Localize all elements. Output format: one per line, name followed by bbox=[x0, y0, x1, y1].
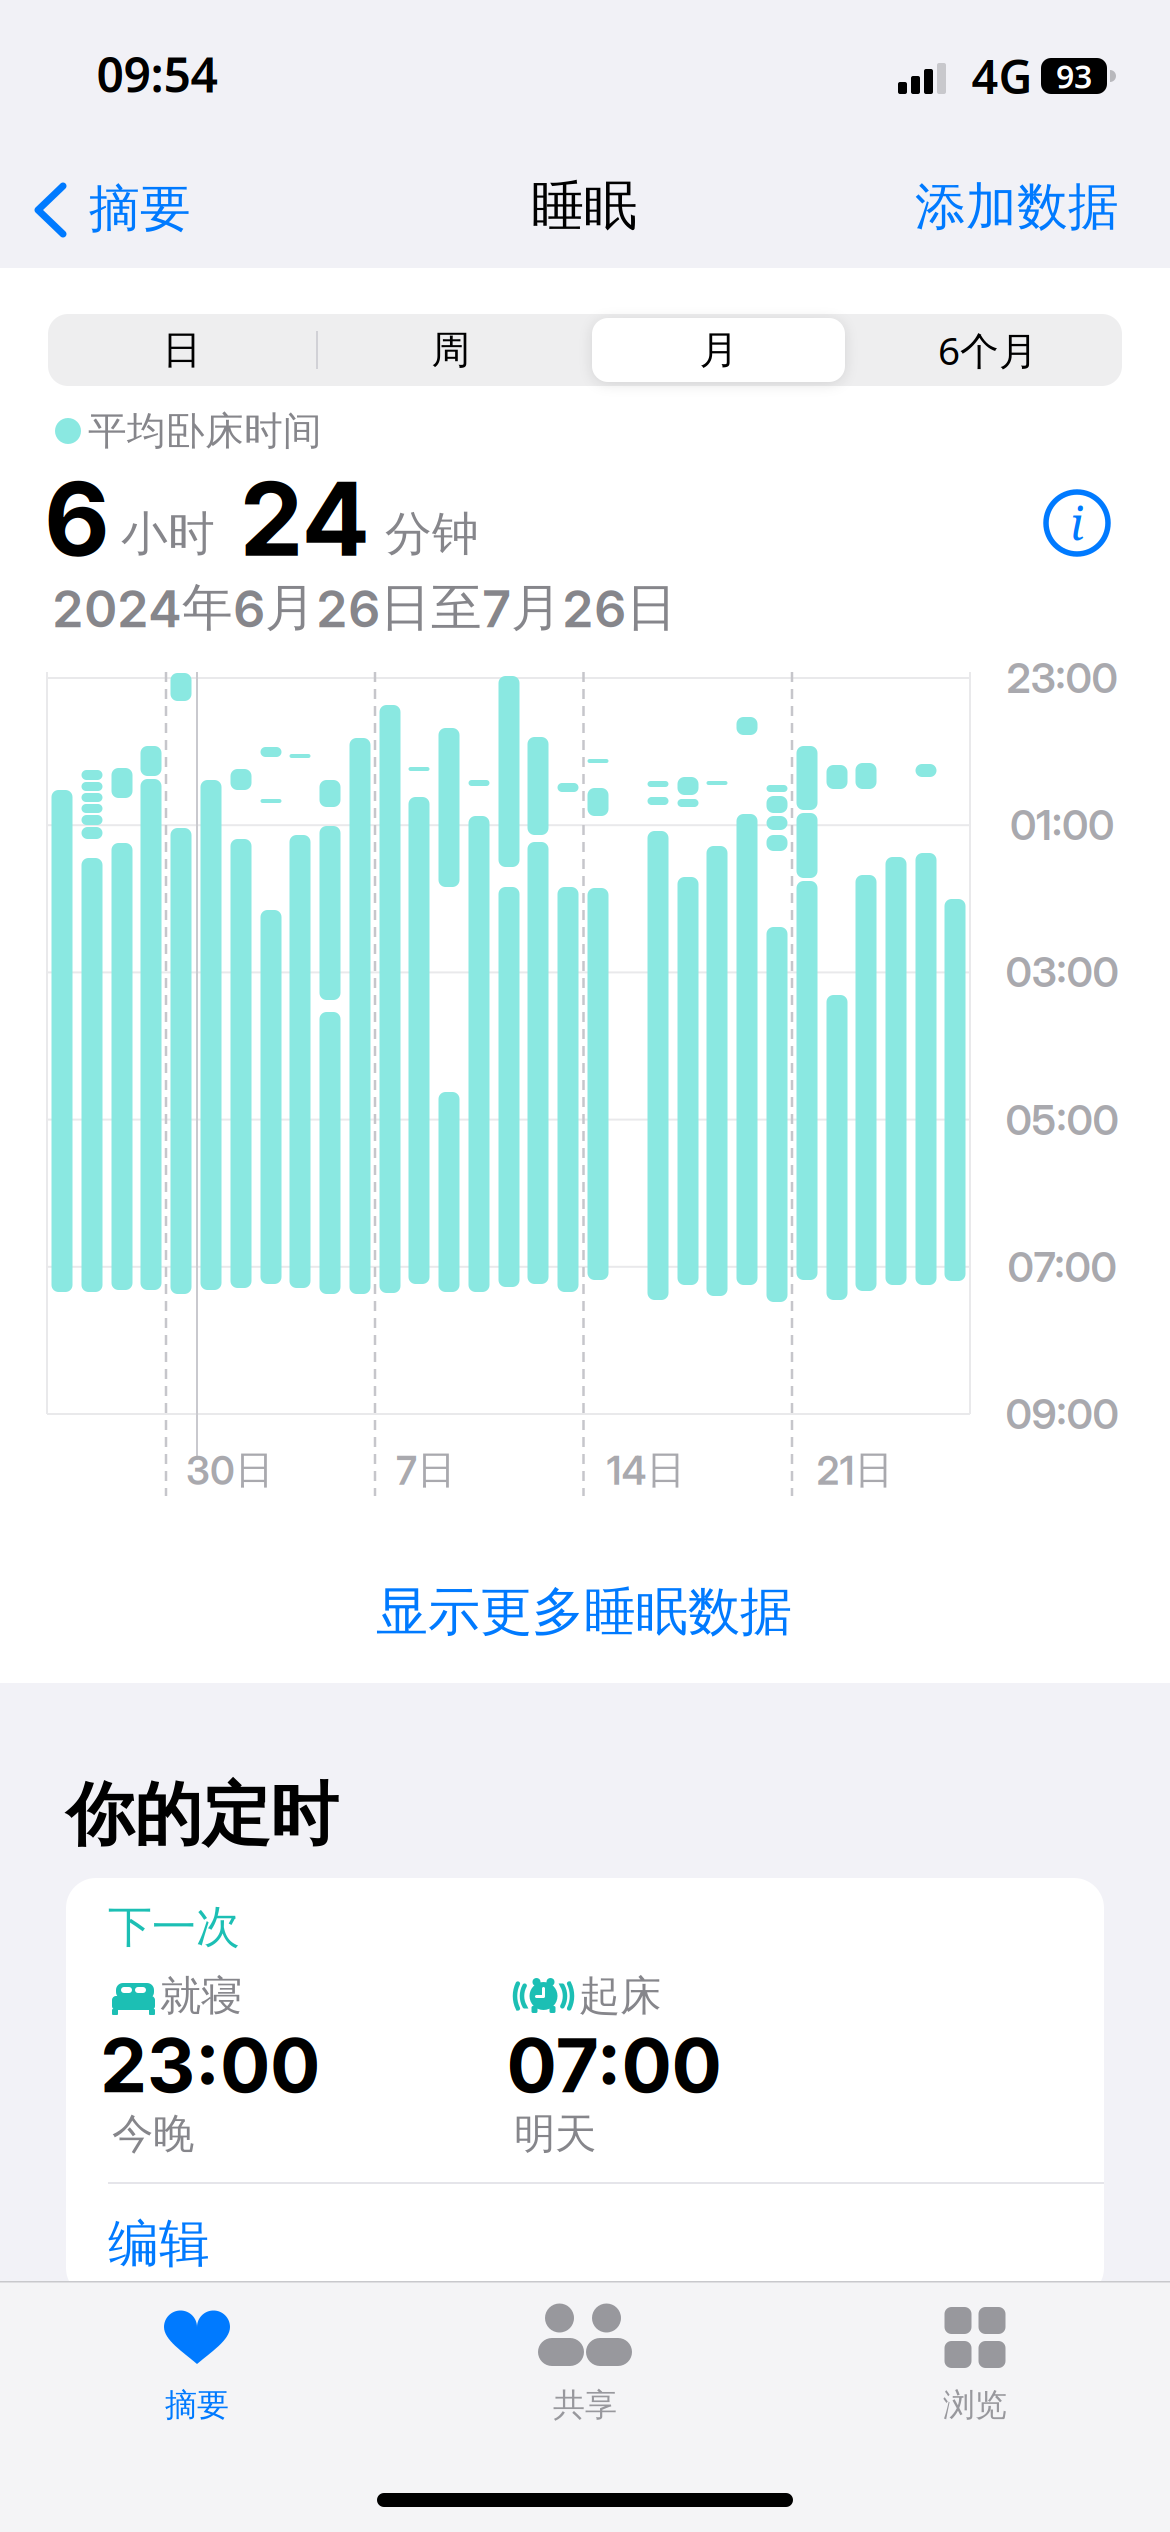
button[interactable]: 共享 bbox=[390, 2290, 778, 2480]
button[interactable]: 摘要 bbox=[30, 164, 250, 254]
staticText: 下一次 bbox=[108, 1900, 240, 1954]
staticText: 摘要 bbox=[165, 2385, 229, 2425]
button[interactable]: 6个月 bbox=[854, 314, 1122, 386]
staticText: 6 bbox=[44, 458, 110, 580]
staticText: 浏览 bbox=[943, 2385, 1007, 2425]
button[interactable]: i bbox=[1032, 478, 1122, 568]
staticText: 93 bbox=[1056, 55, 1092, 97]
staticText: 07:00 bbox=[506, 2020, 721, 2110]
staticText: 4G bbox=[971, 45, 1032, 107]
staticText: 显示更多睡眠数据 bbox=[376, 1580, 792, 1644]
button[interactable]: 日 bbox=[48, 314, 316, 386]
staticText: 周 bbox=[431, 326, 470, 374]
staticText: 你的定时 bbox=[66, 1773, 338, 1857]
staticText: 03:00 bbox=[1005, 947, 1118, 997]
staticText: 分钟 bbox=[385, 505, 479, 563]
staticText: 日 bbox=[162, 326, 201, 374]
staticText: 共享 bbox=[553, 2385, 617, 2425]
staticText: i bbox=[1070, 492, 1084, 554]
staticText: 09:54 bbox=[96, 42, 217, 106]
staticText: 23:00 bbox=[100, 2020, 320, 2110]
staticText: 09:00 bbox=[1005, 1389, 1118, 1439]
button[interactable]: 摘要 bbox=[2, 2290, 390, 2480]
staticText: 起床 bbox=[579, 1971, 661, 2021]
staticText: 小时 bbox=[121, 505, 215, 563]
staticText: 7日 bbox=[396, 1446, 456, 1494]
staticText: 睡眠 bbox=[531, 173, 637, 239]
staticText: 就寝 bbox=[160, 1971, 242, 2021]
staticText: 编辑 bbox=[108, 2213, 210, 2275]
button[interactable]: 显示更多睡眠数据 bbox=[324, 1567, 844, 1657]
staticText: 23:00 bbox=[1006, 653, 1117, 703]
button[interactable]: 月 bbox=[585, 314, 853, 386]
button[interactable]: 添加数据 bbox=[897, 167, 1137, 247]
staticText: 07:00 bbox=[1007, 1242, 1116, 1292]
staticText: 05:00 bbox=[1005, 1095, 1118, 1145]
staticText: 21日 bbox=[816, 1446, 893, 1494]
staticText: 24 bbox=[239, 458, 370, 580]
button[interactable]: 浏览 bbox=[780, 2290, 1168, 2480]
staticText: 14日 bbox=[606, 1446, 685, 1494]
staticText: 01:00 bbox=[1010, 800, 1114, 850]
staticText: 平均卧床时间 bbox=[88, 407, 322, 455]
button[interactable]: 周 bbox=[317, 314, 585, 386]
staticText: 2024年6月26日至7月26日 bbox=[52, 576, 677, 640]
staticText: 今晚 bbox=[112, 2109, 194, 2159]
button[interactable]: 编辑 bbox=[69, 2204, 249, 2284]
staticText: 6个月 bbox=[938, 324, 1038, 376]
staticText: 摘要 bbox=[89, 178, 191, 240]
staticText: 30日 bbox=[186, 1446, 274, 1494]
staticText: 明天 bbox=[514, 2109, 596, 2159]
staticText: 添加数据 bbox=[915, 176, 1119, 238]
staticText: 月 bbox=[699, 326, 738, 374]
